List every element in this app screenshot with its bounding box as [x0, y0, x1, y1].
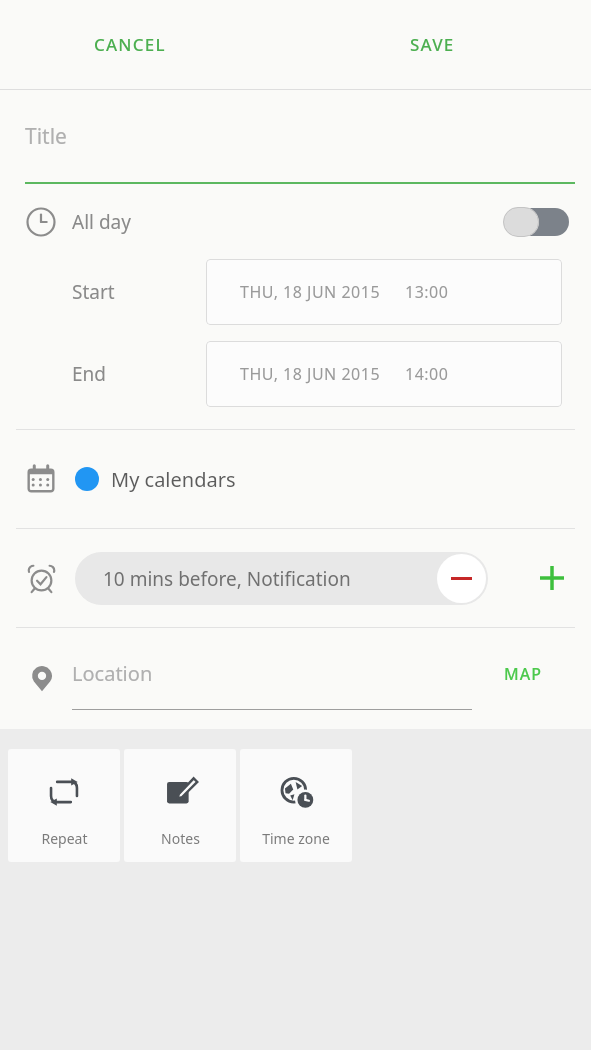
- button[interactable]: Time zone: [240, 749, 352, 862]
- staticText: End: [72, 361, 106, 387]
- button[interactable]: All day: [0, 184, 591, 259]
- staticText: All day: [72, 209, 131, 235]
- staticText: 10 mins before, Notification: [103, 566, 351, 592]
- staticText: Title: [25, 122, 67, 151]
- button[interactable]: My calendars: [0, 430, 591, 528]
- staticText: MAP: [504, 663, 542, 685]
- button[interactable]: 10 mins before, Notification: [75, 552, 488, 605]
- button[interactable]: Notes: [124, 749, 236, 862]
- button[interactable]: SAVE: [394, 23, 471, 66]
- staticText: Repeat: [41, 829, 88, 848]
- button[interactable]: Location: [72, 644, 472, 714]
- button[interactable]: CANCEL: [78, 23, 182, 66]
- staticText: 14:00: [405, 363, 449, 385]
- staticText: Location: [72, 660, 153, 687]
- staticText: CANCEL: [94, 33, 166, 56]
- button[interactable]: Remove reminder: [437, 554, 486, 603]
- button[interactable]: Add reminder: [530, 556, 574, 600]
- staticText: 13:00: [405, 281, 449, 303]
- staticText: My calendars: [111, 466, 236, 493]
- staticText: Notes: [161, 829, 200, 848]
- staticText: Start: [72, 279, 115, 305]
- button[interactable]: Repeat: [8, 749, 120, 862]
- button[interactable]: All day toggle: [503, 207, 569, 237]
- staticText: THU, 18 JUN 2015: [240, 281, 381, 303]
- staticText: Time zone: [262, 829, 330, 848]
- staticText: SAVE: [410, 33, 455, 56]
- button[interactable]: THU, 18 JUN 2015: [206, 259, 562, 325]
- button[interactable]: Title: [0, 90, 591, 182]
- button[interactable]: MAP: [492, 655, 554, 693]
- button[interactable]: THU, 18 JUN 2015: [206, 341, 562, 407]
- staticText: THU, 18 JUN 2015: [240, 363, 381, 385]
